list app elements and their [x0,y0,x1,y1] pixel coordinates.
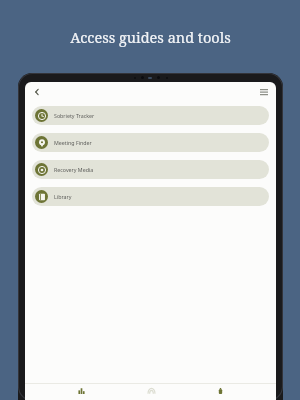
button[interactable]: Meeting Finder [32,133,269,152]
button[interactable]: Guides [138,384,164,400]
button[interactable]: Sobriety Tracker [32,106,269,125]
button[interactable]: Profile [207,384,233,400]
staticText: Recovery Media [54,166,94,173]
staticText: Access guides and tools [70,27,231,47]
button[interactable]: Back [29,84,45,100]
button[interactable]: Menu [256,84,272,100]
staticText: Sobriety Tracker [54,112,95,119]
staticText: Meeting Finder [54,139,92,146]
staticText: Library [54,193,72,200]
button[interactable]: Home [68,384,94,400]
button[interactable]: Recovery Media [32,160,269,179]
button[interactable]: Library [32,187,269,206]
